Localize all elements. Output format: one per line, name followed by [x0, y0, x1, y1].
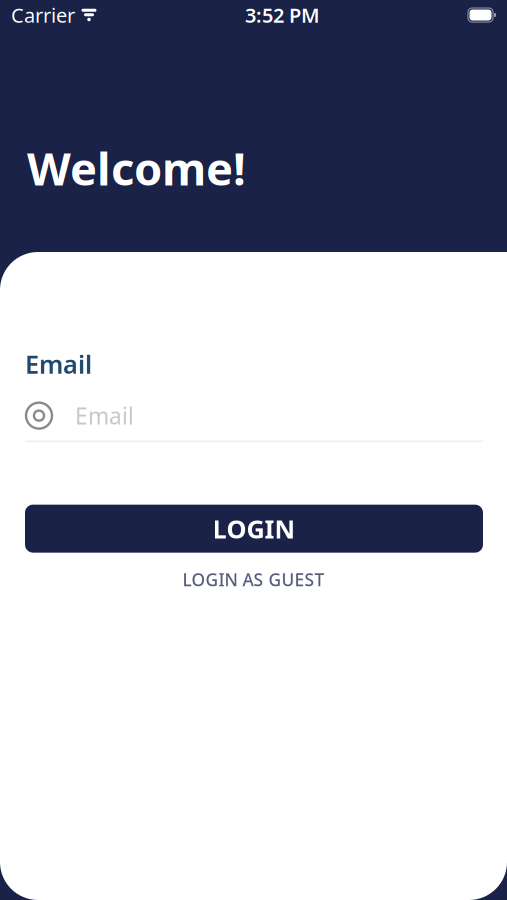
- staticText: Email: [25, 347, 92, 381]
- staticText: 3:52 PM: [245, 2, 320, 28]
- staticText: LOGIN AS GUEST: [182, 568, 324, 591]
- staticText: Carrier: [11, 2, 75, 28]
- staticText: Email: [75, 401, 134, 431]
- button[interactable]: LOGIN AS GUEST: [0, 565, 507, 595]
- staticText: LOGIN: [212, 512, 295, 545]
- staticText: Welcome!: [27, 138, 246, 198]
- button[interactable]: LOGIN: [25, 505, 483, 553]
